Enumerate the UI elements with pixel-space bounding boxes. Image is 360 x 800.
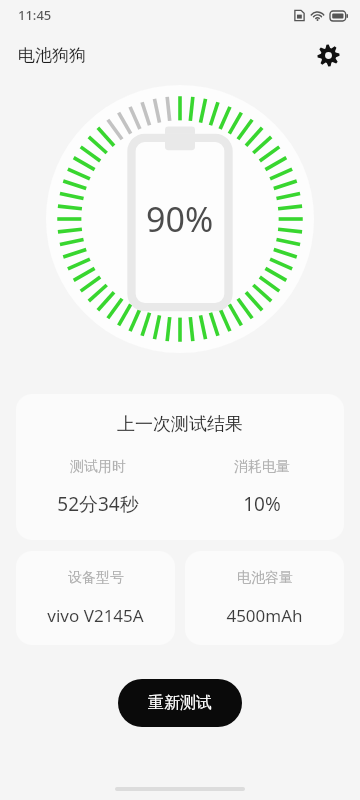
staticText: 11:45 xyxy=(18,6,52,24)
staticText: 消耗电量 xyxy=(234,458,290,476)
staticText: 上一次测试结果 xyxy=(16,413,344,436)
staticText: 90% xyxy=(146,196,214,242)
staticText: 4500mAh xyxy=(226,604,303,627)
button[interactable]: 电池容量 xyxy=(185,551,344,645)
staticText: 电池狗狗 xyxy=(18,45,86,66)
button[interactable]: 设备型号 xyxy=(16,551,175,645)
staticText: vivo V2145A xyxy=(47,604,144,627)
button[interactable]: 重新测试 xyxy=(118,679,242,727)
staticText: 电池容量 xyxy=(237,569,293,587)
staticText: 52分34秒 xyxy=(57,491,139,517)
staticText: 测试用时 xyxy=(70,458,126,476)
staticText: 10% xyxy=(243,491,281,517)
button[interactable]: Settings xyxy=(309,36,347,74)
staticText: 设备型号 xyxy=(68,569,124,587)
staticText: 重新测试 xyxy=(148,693,212,713)
button[interactable]: 上一次测试结果 xyxy=(16,394,344,540)
